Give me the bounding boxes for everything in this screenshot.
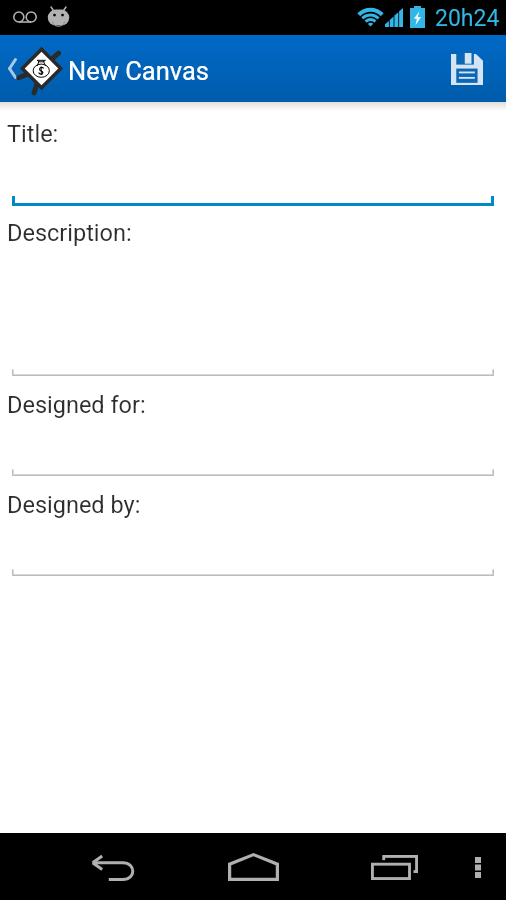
staticText: Designed for: xyxy=(7,391,146,419)
button[interactable]: Save xyxy=(442,35,506,102)
button[interactable]: Designed by input xyxy=(0,522,506,576)
button[interactable]: Back xyxy=(74,845,152,891)
button[interactable]: Navigate up xyxy=(0,35,68,102)
staticText: Designed by: xyxy=(7,491,141,519)
button[interactable]: Description input xyxy=(0,250,506,376)
staticText: New Canvas xyxy=(68,56,209,86)
button[interactable]: Recents xyxy=(356,844,433,890)
button[interactable]: More options xyxy=(456,843,500,891)
staticText: Title: xyxy=(7,120,59,148)
staticText: Description: xyxy=(7,219,132,247)
button[interactable]: Home xyxy=(214,842,292,892)
button[interactable]: Designed for input xyxy=(0,422,506,476)
button[interactable]: Title input xyxy=(0,150,506,206)
staticText: 20h24 xyxy=(435,5,500,32)
